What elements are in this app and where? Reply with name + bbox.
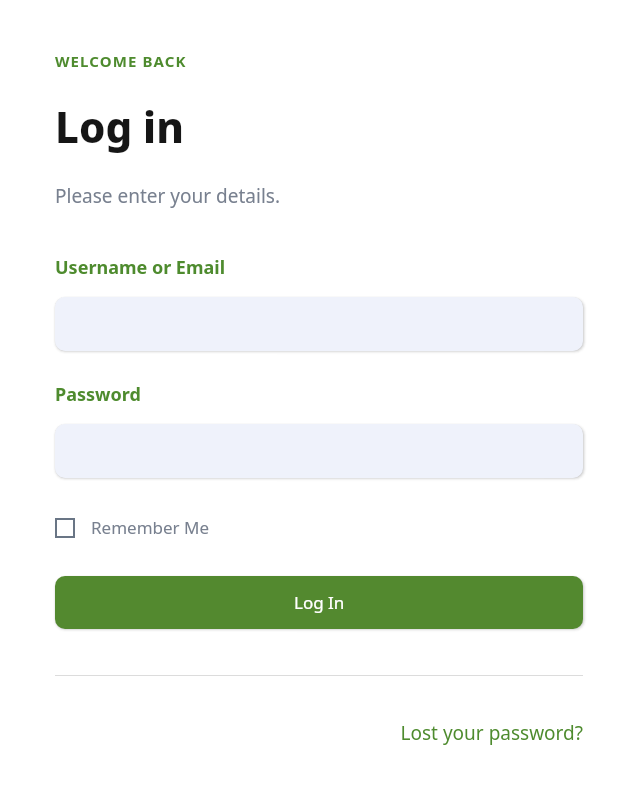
staticText: Please enter your details.	[55, 183, 280, 209]
staticText: Remember Me	[91, 516, 210, 539]
button[interactable]: Log In	[55, 576, 583, 629]
button[interactable]: Lost your password?	[400, 720, 583, 746]
staticText: Password	[55, 382, 141, 407]
staticText: Username or Email	[55, 255, 226, 280]
staticText: Log In	[294, 591, 345, 614]
staticText: WELCOME BACK	[55, 51, 187, 71]
button[interactable]: Remember Me	[55, 516, 210, 539]
staticText: Log in	[55, 98, 184, 155]
